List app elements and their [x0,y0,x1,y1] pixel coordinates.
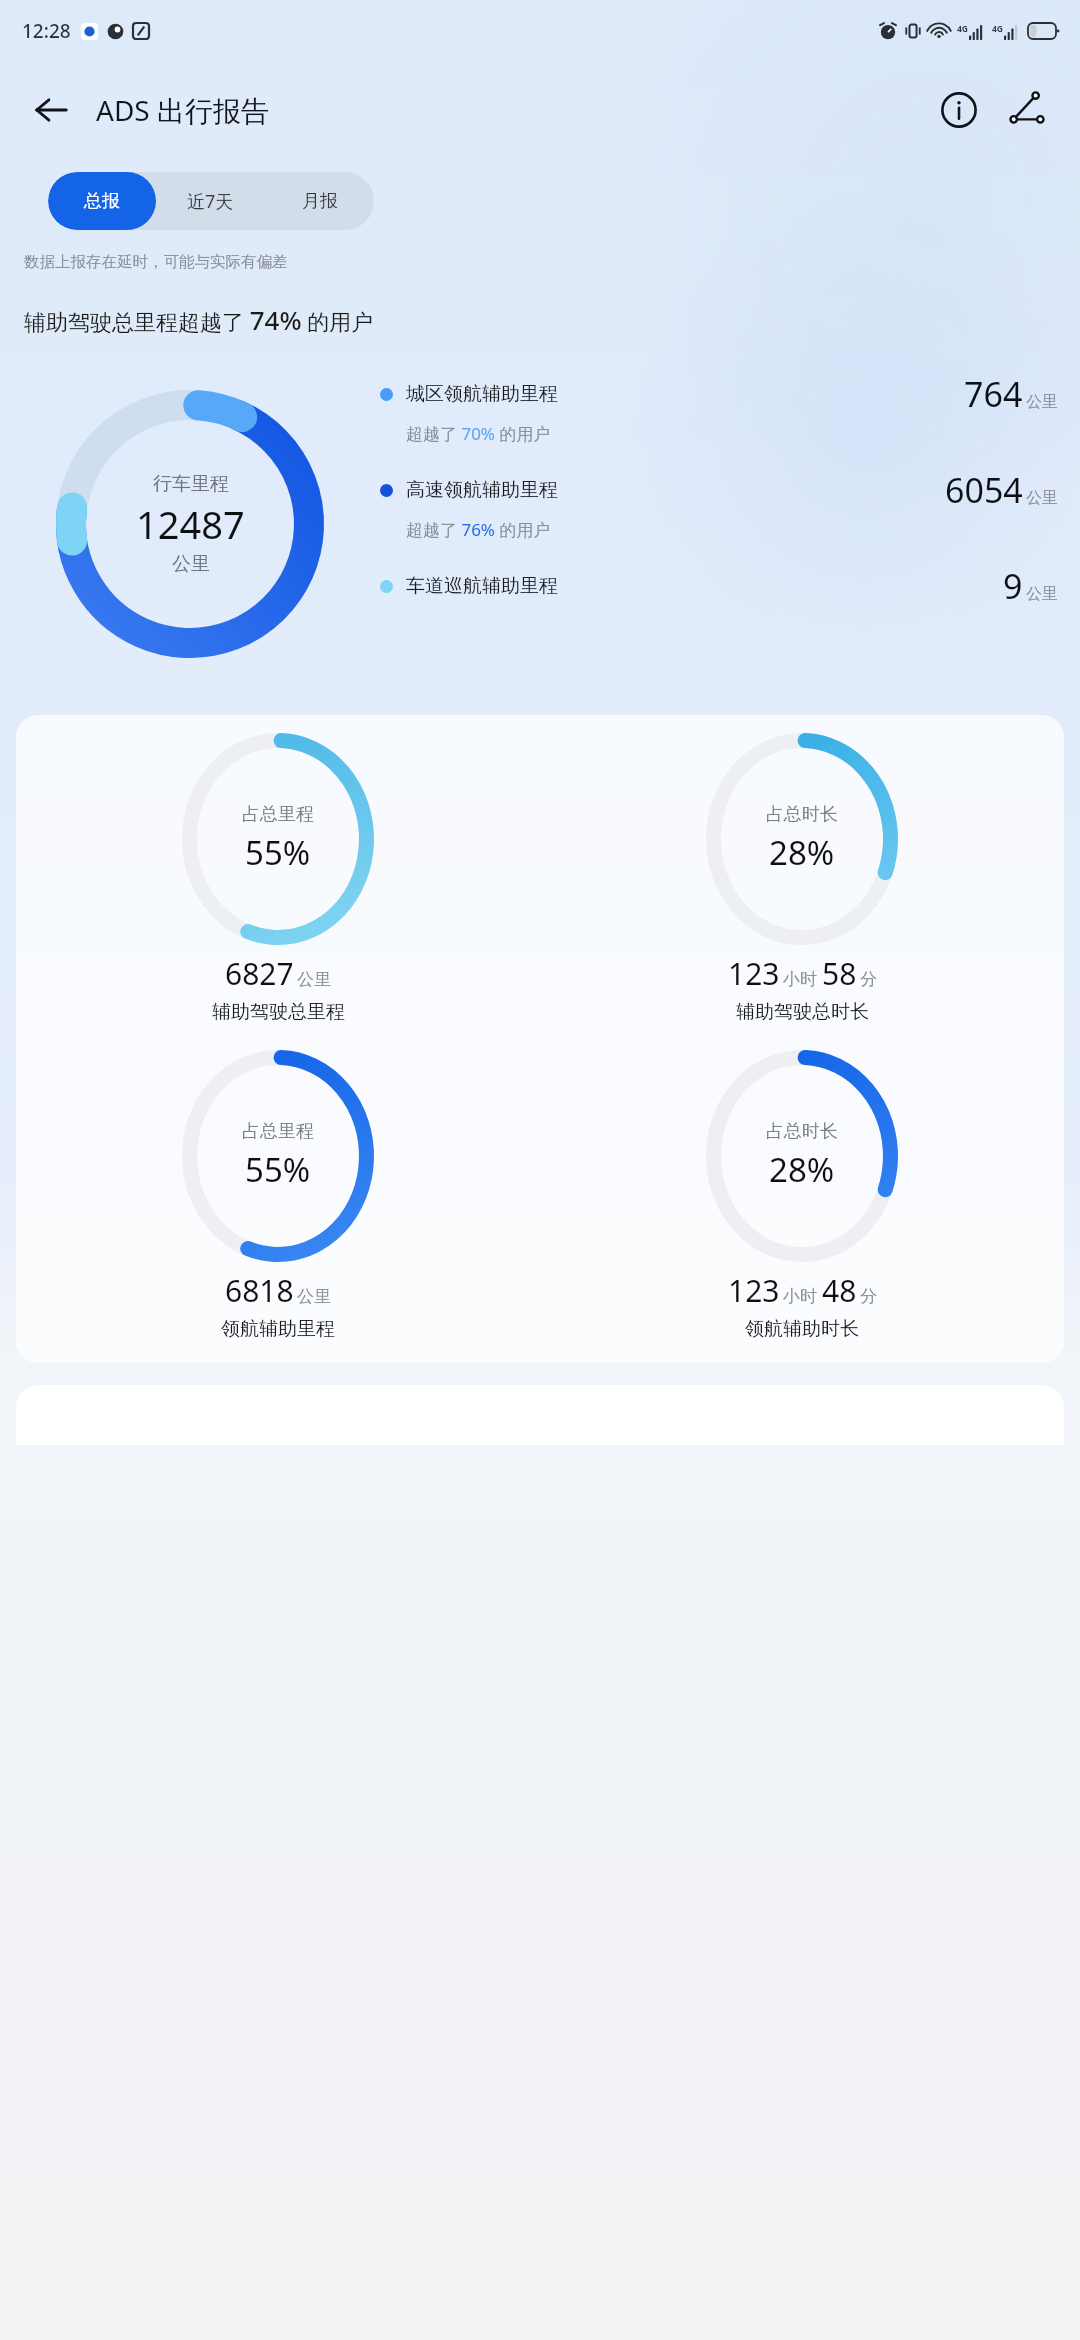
staticText: 占总时长 [766,1120,838,1143]
staticText: 月报 [302,190,338,213]
button[interactable]: Back [22,81,80,139]
staticText: 公里 [1026,392,1058,412]
staticText: ADS 出行报告 [96,91,269,129]
staticText: 6827 [225,953,294,994]
staticText: 辅助驾驶总时长 [736,1000,869,1024]
button[interactable]: 占总里程 [16,733,540,1024]
staticText: 分 [860,969,877,990]
staticText: 占总时长 [766,803,838,826]
button[interactable]: 占总里程 [16,1050,540,1341]
staticText: 车道巡航辅助里程 [406,574,558,598]
staticText: 占总里程 [242,803,314,826]
staticText: 764 [964,371,1023,417]
button[interactable]: 月报 [265,172,374,230]
staticText: 小时 [783,1286,817,1307]
button[interactable]: 占总时长 [540,733,1064,1024]
staticText: 28% [769,1147,835,1192]
staticText: 6054 [945,467,1023,513]
staticText: 公里 [1026,488,1058,508]
button[interactable]: 近7天 [156,172,265,230]
staticText: 28% [769,830,835,875]
staticText: 占总里程 [242,1120,314,1143]
staticText: 123 [728,953,780,994]
button[interactable]: Info [928,79,990,141]
staticText: 48 [822,1270,857,1311]
staticText: 数据上报存在延时，可能与实际有偏差 [24,252,288,272]
staticText: 公里 [297,969,331,990]
button[interactable]: 总报 [48,172,156,230]
staticText: 近7天 [187,189,234,214]
staticText: 6818 [225,1270,294,1311]
staticText: 城区领航辅助里程 [406,382,558,406]
staticText: 行车里程 [153,472,229,496]
staticText: 领航辅助里程 [221,1317,335,1341]
staticText: 9 [1003,563,1023,609]
button[interactable]: 占总时长 [540,1050,1064,1341]
staticText: 辅助驾驶总里程超越了 74% 的用户 [24,302,374,337]
staticText: 12:28 [22,18,71,44]
staticText: 高速领航辅助里程 [406,478,558,502]
staticText: 58 [822,953,857,994]
staticText: 领航辅助时长 [745,1317,859,1341]
staticText: 超越了 70% 的用户 [406,422,551,445]
staticText: 小时 [783,969,817,990]
staticText: 总报 [84,190,120,213]
staticText: 55% [245,1147,311,1192]
staticText: 公里 [172,552,210,576]
staticText: 123 [728,1270,780,1311]
staticText: 12487 [136,498,245,550]
staticText: 公里 [1026,584,1058,604]
staticText: 超越了 76% 的用户 [406,518,551,541]
button[interactable]: Share [996,79,1058,141]
staticText: 55% [245,830,311,875]
staticText: 4G [957,23,969,35]
staticText: 公里 [297,1286,331,1307]
staticText: 辅助驾驶总里程 [212,1000,345,1024]
staticText: 分 [860,1286,877,1307]
staticText: 4G [992,23,1004,35]
